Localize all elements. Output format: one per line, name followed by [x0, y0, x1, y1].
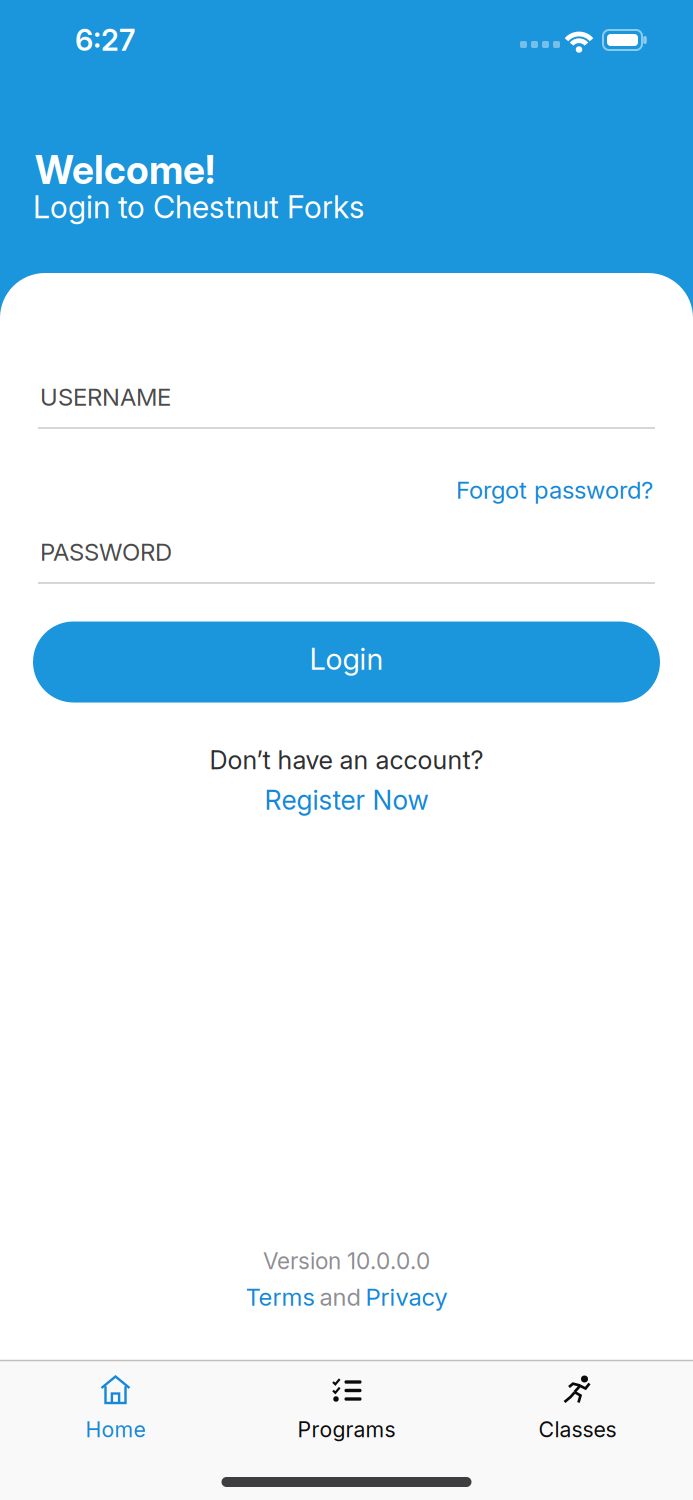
staticText: Login to Chestnut Forks [33, 189, 364, 225]
staticText: Register Now [264, 784, 428, 816]
staticText: Home [85, 1417, 145, 1442]
staticText: Forgot password? [456, 476, 653, 504]
button[interactable]: Home [0, 1361, 231, 1500]
staticText: Classes [538, 1417, 616, 1442]
button[interactable]: Forgot password? [456, 476, 653, 504]
staticText: Welcome! [35, 147, 215, 193]
staticText: Login [309, 642, 383, 676]
staticText: Don’t have an account? [209, 745, 483, 775]
staticText: Privacy [365, 1283, 447, 1311]
button[interactable]: Privacy [365, 1283, 447, 1311]
staticText: 6:27 [75, 23, 135, 57]
button[interactable]: Terms [245, 1283, 314, 1311]
staticText: PASSWORD [40, 538, 172, 566]
button[interactable]: Login [33, 621, 660, 702]
staticText: Terms [245, 1283, 314, 1311]
button[interactable]: Register Now [264, 784, 428, 816]
staticText: Version 10.0.0.0 [263, 1248, 430, 1274]
staticText: USERNAME [40, 383, 171, 411]
staticText: and [319, 1283, 360, 1311]
button[interactable]: Classes [462, 1361, 693, 1500]
staticText: Programs [297, 1417, 395, 1442]
button[interactable]: Programs [231, 1361, 462, 1500]
